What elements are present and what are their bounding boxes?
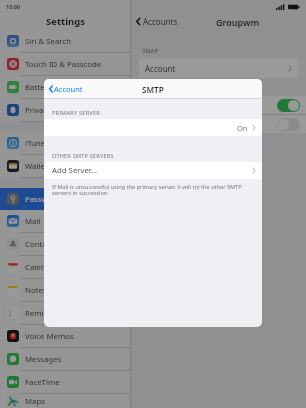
staticText: Accounts xyxy=(143,16,178,27)
button[interactable]: Calendar xyxy=(0,256,130,278)
staticText: Notes xyxy=(25,285,47,296)
button[interactable]: iTunes & App Store xyxy=(0,132,130,154)
staticText: Contacts xyxy=(25,239,57,250)
button[interactable]: Account xyxy=(139,58,298,78)
staticText: On xyxy=(237,123,248,133)
staticText: OTHER SMTP SERVERS xyxy=(52,152,114,159)
button[interactable]: Messages xyxy=(0,348,130,370)
button[interactable]: Touch ID & Passcode xyxy=(0,53,130,75)
button[interactable]: Privacy xyxy=(0,99,130,121)
button[interactable]: Voice Memos xyxy=(0,325,130,347)
button[interactable]: Siri & Search xyxy=(0,30,130,52)
staticText: Account xyxy=(54,84,83,94)
staticText: Reminders xyxy=(25,308,65,319)
staticText: Maps xyxy=(25,396,45,407)
button[interactable]: Account xyxy=(44,81,88,97)
button[interactable]: Wallet & Apple Pay xyxy=(0,155,130,177)
button[interactable]: Notes xyxy=(0,279,130,301)
button[interactable]: Reminders xyxy=(0,302,130,324)
staticText: Calendar xyxy=(25,262,58,273)
staticText: PRIMARY SERVER xyxy=(52,109,100,116)
button[interactable]: Accounts xyxy=(131,16,182,27)
staticText: Touch ID & Passcode xyxy=(25,59,102,70)
button[interactable]: Toggle on xyxy=(131,96,306,114)
staticText: Wallet & Apple Pay xyxy=(25,161,94,172)
staticText: Passwords & Accounts xyxy=(25,194,108,205)
button[interactable]: Battery xyxy=(0,76,130,98)
button[interactable]: Mail xyxy=(0,210,130,232)
button[interactable]: Add Server... xyxy=(44,162,262,179)
staticText: FaceTime xyxy=(25,377,60,388)
button[interactable]: Passwords & Accounts xyxy=(0,188,130,210)
staticText: 10:00 xyxy=(6,3,21,10)
staticText: Voice Memos xyxy=(25,331,74,342)
staticText: SMTP xyxy=(142,84,164,95)
button[interactable]: FaceTime xyxy=(0,371,130,393)
staticText: Groupwm xyxy=(216,16,260,28)
staticText: Mail xyxy=(25,216,41,227)
staticText: IMAP xyxy=(143,47,159,55)
staticText: Battery xyxy=(25,82,52,93)
staticText: Messages xyxy=(25,354,62,365)
staticText: Settings xyxy=(46,15,85,28)
staticText: Add Server... xyxy=(52,165,98,176)
staticText: Privacy xyxy=(25,105,52,116)
staticText: Siri & Search xyxy=(25,36,71,47)
staticText: Account xyxy=(145,63,176,74)
staticText: iTunes & App Store xyxy=(25,138,95,149)
other: Toggle off xyxy=(277,118,300,131)
other: Toggle on xyxy=(277,99,300,112)
staticText: If Mail is unsuccessful using the primar… xyxy=(52,183,254,197)
button[interactable]: Toggle off xyxy=(131,115,306,133)
button[interactable]: Maps xyxy=(0,394,130,408)
button[interactable]: Contacts xyxy=(0,233,130,255)
button[interactable]: On xyxy=(44,119,262,136)
